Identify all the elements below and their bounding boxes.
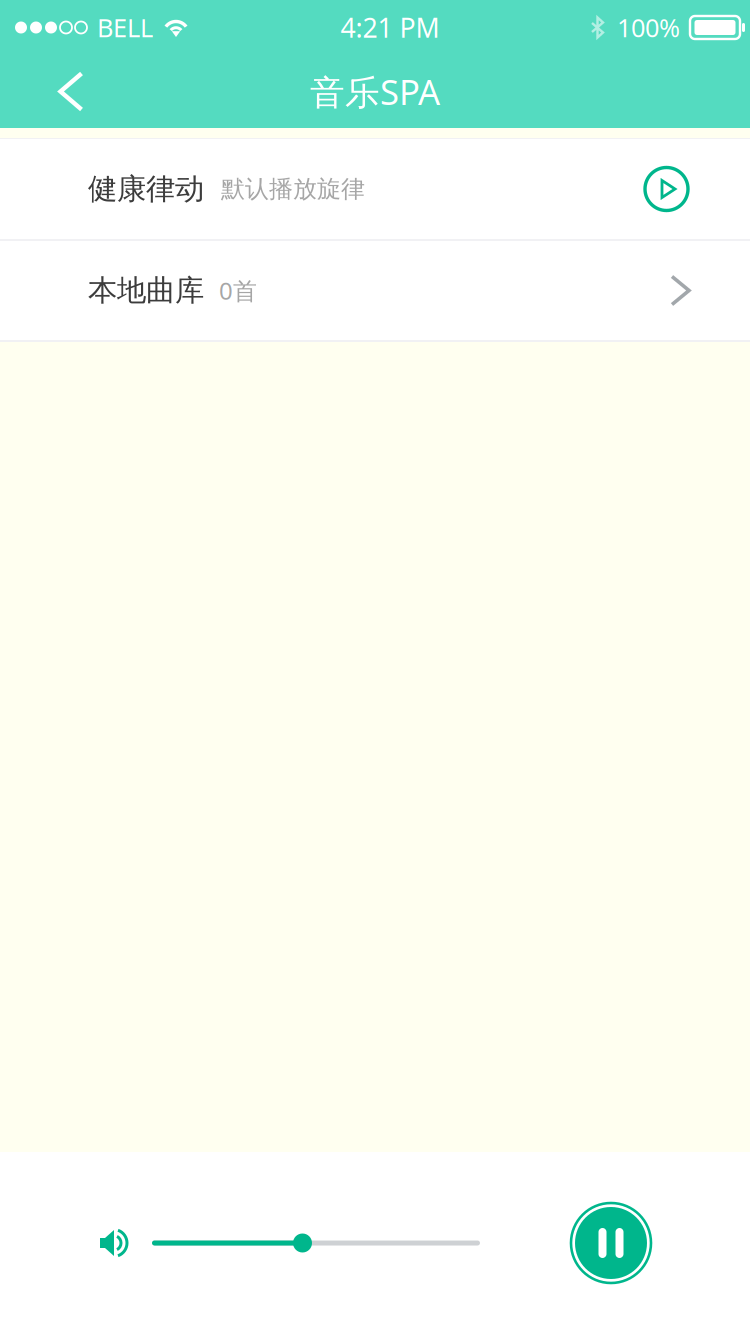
staticText: 本地曲库 (88, 272, 204, 308)
button[interactable]: 健康律动 (0, 139, 750, 239)
staticText: 健康律动 (88, 171, 204, 207)
staticText: BELL (97, 11, 153, 44)
staticText: 音乐SPA (310, 68, 440, 114)
button[interactable]: Volume (94, 1221, 138, 1265)
staticText: 0首 (219, 275, 257, 306)
button[interactable]: Back (0, 55, 93, 128)
staticText: 100% (617, 11, 680, 44)
staticText: 默认播放旋律 (221, 174, 365, 204)
staticText: 4:21 PM (340, 10, 439, 45)
button[interactable]: Pause (571, 1203, 651, 1283)
button[interactable]: 本地曲库 (0, 241, 750, 340)
